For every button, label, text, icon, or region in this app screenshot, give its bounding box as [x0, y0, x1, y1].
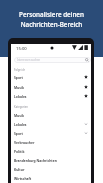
button[interactable]: Sport — [11, 128, 91, 137]
staticText: Sport — [14, 131, 23, 135]
staticText: 15:00 — [16, 46, 27, 52]
staticText: Musik — [14, 113, 24, 117]
staticText: Kategorien — [14, 105, 28, 109]
button[interactable]: Lokales — [11, 119, 91, 128]
staticText: Interessen suchen — [17, 58, 41, 62]
button[interactable]: Verbraucher — [11, 137, 91, 146]
button[interactable]: Politik — [11, 146, 91, 155]
button[interactable]: Musik — [11, 82, 91, 91]
staticText: Brandenburg Nachrichten — [14, 158, 57, 162]
button[interactable]: Lokales — [11, 91, 91, 100]
staticText: Lokales — [14, 94, 27, 98]
staticText: Wirtschaft — [14, 176, 32, 180]
button[interactable]: Wirtschaft — [11, 173, 91, 182]
staticText: Lokales — [14, 122, 27, 126]
staticText: Sport — [14, 75, 23, 79]
button[interactable]: Sport — [11, 72, 91, 81]
button[interactable]: Kultur — [11, 164, 91, 173]
staticText: Verbraucher — [14, 140, 35, 144]
button[interactable]: Interessen suchen — [14, 57, 91, 63]
staticText: Musik — [14, 85, 24, 89]
button[interactable]: Musik — [11, 110, 91, 119]
button[interactable]: Brandenburg Nachrichten — [11, 155, 91, 164]
staticText: Politik — [14, 149, 25, 153]
staticText: Personalisiere deinen Nachrichten-Bereic… — [6, 10, 97, 28]
staticText: Folge ich — [14, 68, 26, 72]
other: Suchen — [85, 58, 89, 62]
staticText: Kultur — [14, 167, 25, 171]
